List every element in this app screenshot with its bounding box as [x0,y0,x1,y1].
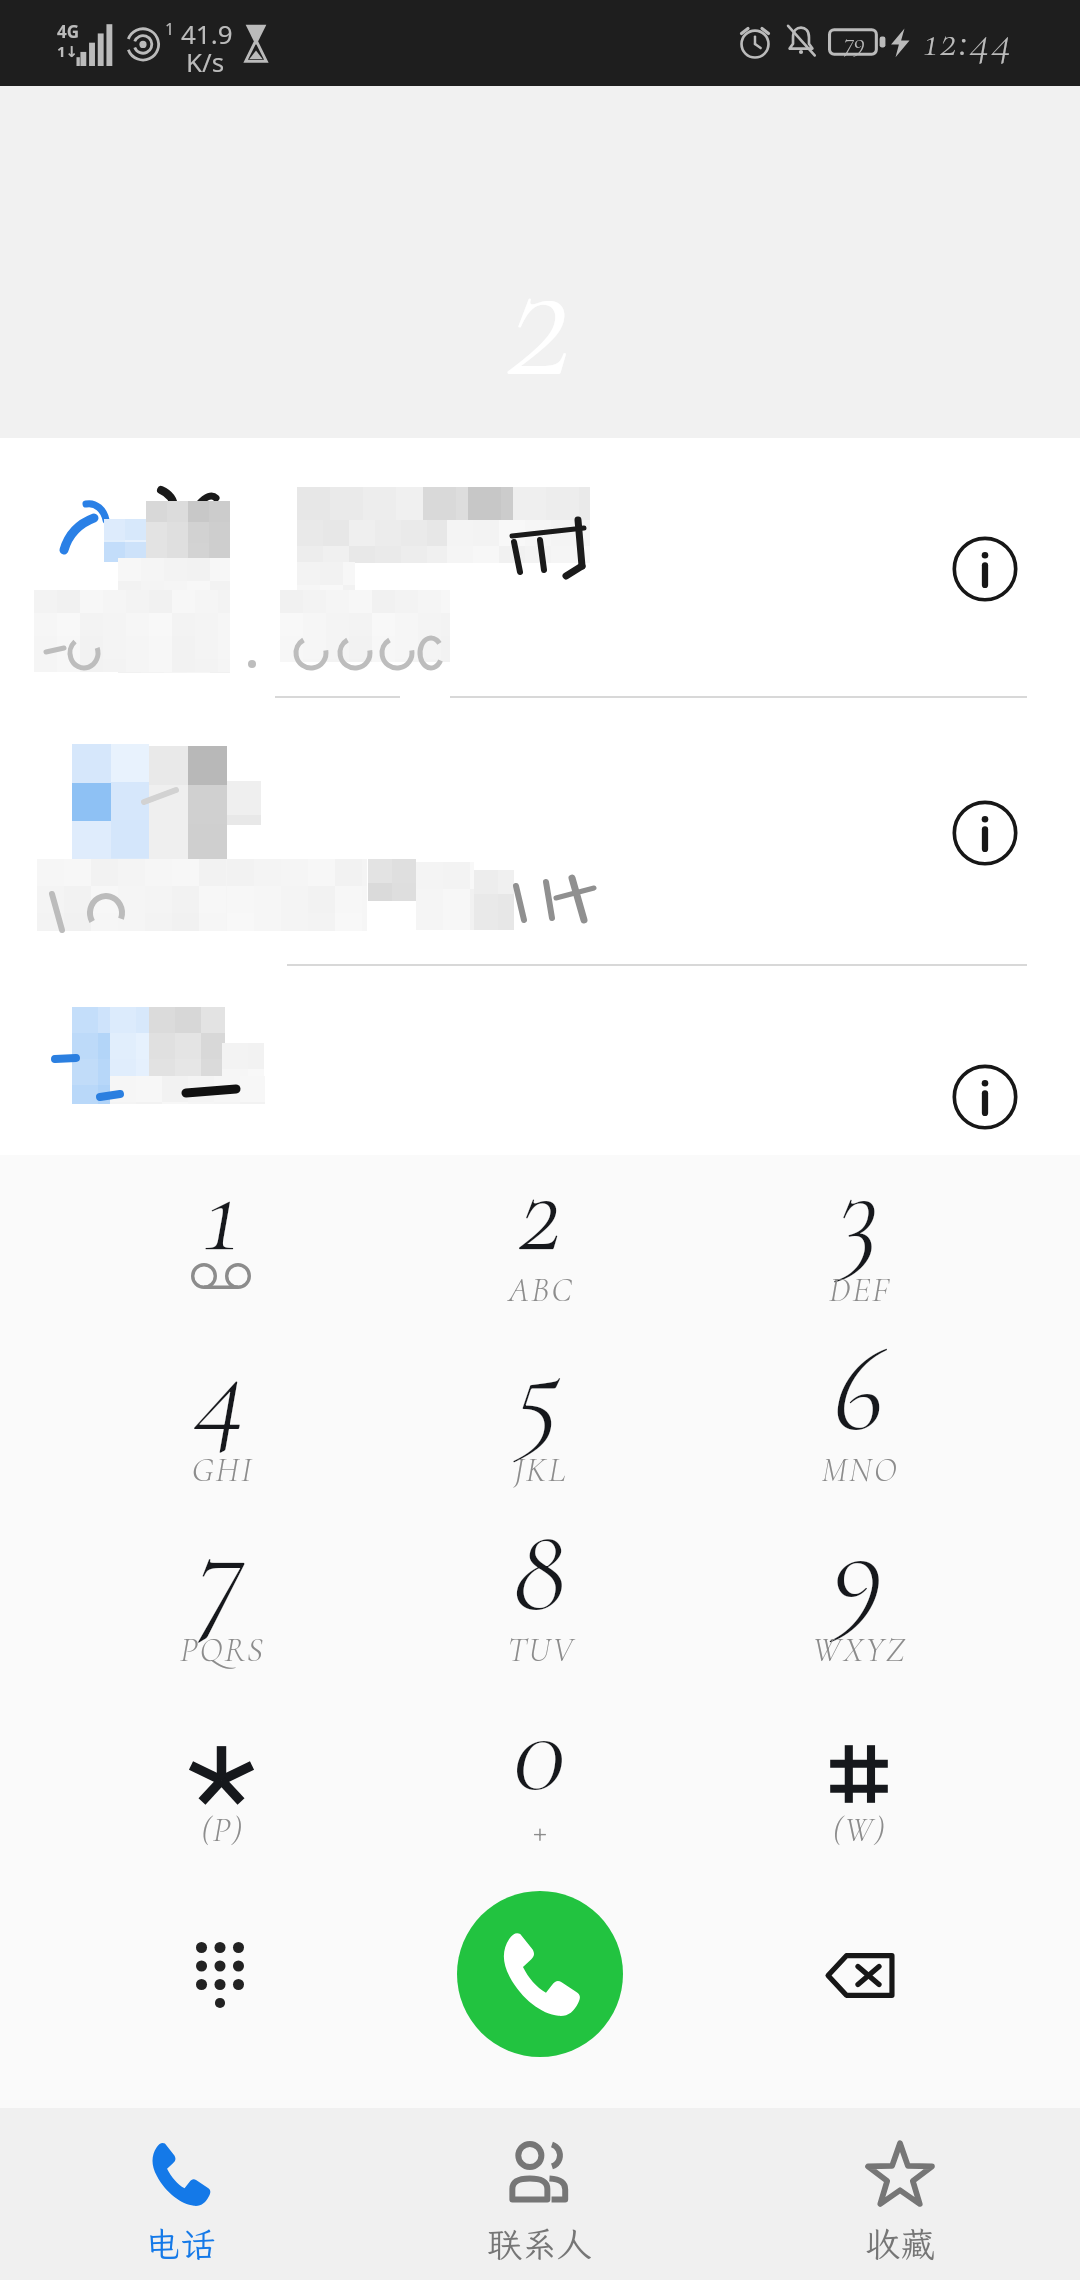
button[interactable]: 5 [380,1335,699,1515]
staticText: PQRS [180,1629,265,1671]
button[interactable]: 9 [699,1515,1018,1695]
button[interactable]: 电话 [0,2108,360,2280]
staticText: MNO [821,1449,899,1491]
button[interactable]: 7 [62,1515,380,1695]
staticText: (P) [201,1809,244,1851]
staticText: DEF [829,1269,891,1311]
button[interactable]: Call details [952,800,1018,866]
staticText: 9 [833,1498,884,1643]
button[interactable]: Call [457,1891,623,2057]
staticText: WXYZ [812,1629,907,1671]
staticText: 收藏 [865,2221,936,2267]
staticText: 3 [838,1138,879,1283]
button[interactable]: 8 [380,1515,699,1695]
staticText: 5 [517,1318,562,1463]
staticText: JKL [514,1449,568,1491]
button[interactable]: 3 [699,1155,1018,1335]
staticText: 联系人 [487,2221,593,2267]
button[interactable]: Call details [952,536,1018,602]
staticText: GHI [191,1449,254,1491]
staticText: K/s [186,44,225,79]
button[interactable]: (W) [699,1695,1018,1875]
button[interactable]: (P) [62,1695,380,1875]
button[interactable]: 2 [380,1155,699,1335]
staticText: 8 [513,1498,566,1643]
staticText: ABC [508,1269,574,1311]
staticText: 1 [204,1138,239,1283]
button[interactable]: 联系人 [360,2108,720,2280]
button[interactable]: 收藏 [720,2108,1080,2280]
button[interactable]: 4 [62,1335,380,1515]
staticText: TUV [507,1629,575,1671]
staticText: 12:44 [924,12,1015,68]
staticText: (W) [832,1809,887,1851]
staticText: + [533,1809,549,1851]
staticText: 1↓ [57,41,79,61]
button[interactable]: 1 [62,1155,380,1335]
staticText: 41.9 [181,16,233,51]
button[interactable] [0,966,1080,1230]
button[interactable]: Call details [952,1064,1018,1130]
staticText: 79 [844,26,865,57]
staticText: 0 [513,1678,566,1823]
button[interactable] [0,438,1080,702]
staticText: 2 [518,1138,562,1283]
staticText: 6 [833,1318,884,1463]
button[interactable] [0,702,1080,966]
button[interactable]: 6 [699,1335,1018,1515]
button[interactable]: Hide keypad [150,1911,290,2039]
staticText: 4G [57,20,80,43]
staticText: 电话 [145,2221,216,2267]
button[interactable]: Delete [790,1913,930,2037]
staticText: 7 [198,1498,245,1643]
staticText: 2 [507,206,573,426]
staticText: 4 [196,1318,247,1463]
button[interactable]: 0 [380,1695,699,1875]
staticText: 1 [165,18,175,40]
